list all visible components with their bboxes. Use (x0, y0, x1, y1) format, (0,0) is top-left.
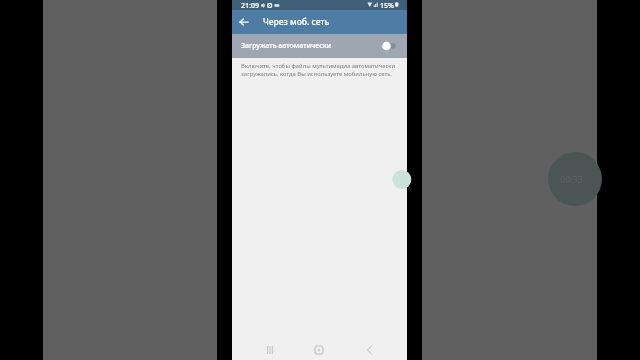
button[interactable]: Back (232, 10, 256, 34)
staticText: Через моб. сеть (263, 16, 330, 28)
button[interactable]: Recent apps (258, 340, 282, 360)
staticText: 15% (380, 1, 394, 11)
button[interactable]: Загружать автоматически (232, 34, 407, 58)
button[interactable]: Home (307, 340, 331, 360)
staticText: Загружать автоматически (241, 41, 331, 51)
button[interactable]: Back (357, 340, 381, 360)
staticText: 21:09 (241, 1, 259, 11)
staticText: Включите, чтобы файлы мультимедиа автома… (241, 62, 399, 78)
staticText: 00:33 (560, 173, 584, 185)
